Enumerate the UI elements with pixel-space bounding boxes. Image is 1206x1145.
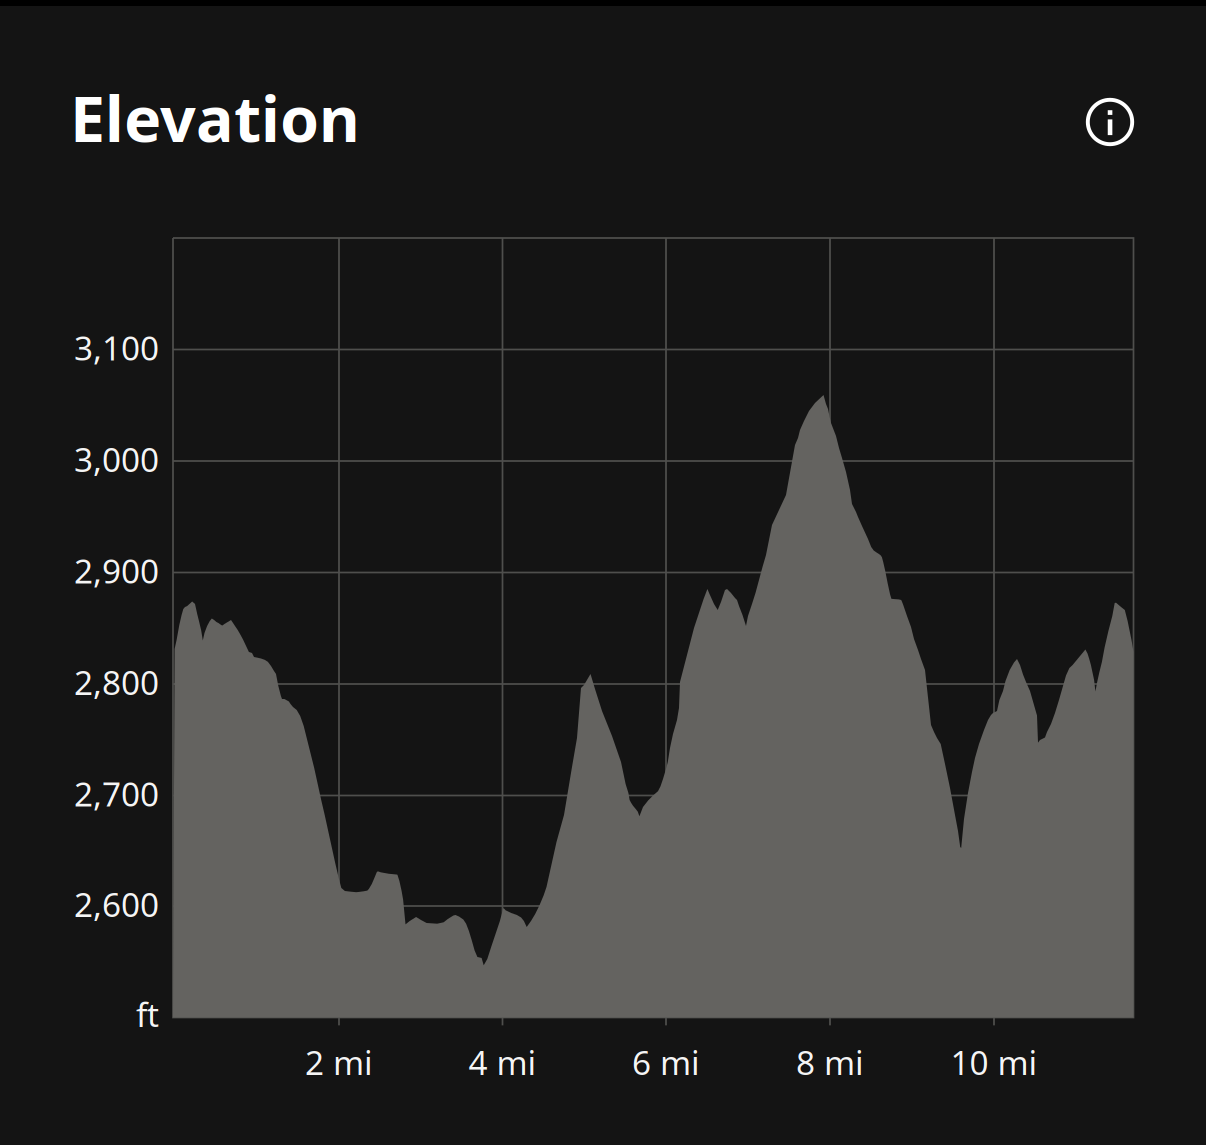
staticText: 8 mi xyxy=(796,1040,864,1084)
button[interactable]: About elevation xyxy=(1077,89,1143,155)
staticText: Elevation xyxy=(70,76,360,159)
staticText: 2 mi xyxy=(305,1040,373,1084)
staticText: 6 mi xyxy=(632,1040,700,1084)
staticText: 2,900 xyxy=(74,548,159,593)
staticText: 2,800 xyxy=(74,660,159,704)
staticText: 3,100 xyxy=(74,325,159,370)
staticText: 2,600 xyxy=(74,882,159,926)
staticText: 3,000 xyxy=(74,437,159,481)
staticText: 2,700 xyxy=(74,771,159,816)
staticText: ft xyxy=(136,992,159,1036)
staticText: 10 mi xyxy=(950,1040,1037,1084)
staticText: 4 mi xyxy=(468,1040,536,1084)
